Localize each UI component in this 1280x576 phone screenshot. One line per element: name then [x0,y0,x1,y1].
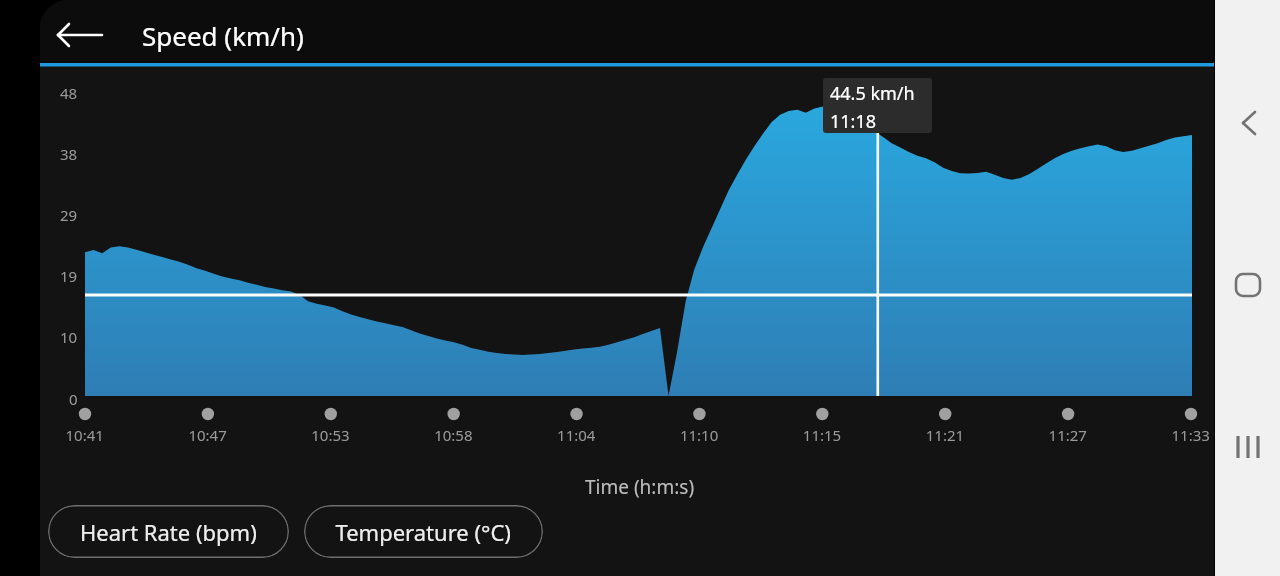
button[interactable]: Recent apps [1225,424,1271,470]
button[interactable] [48,505,289,558]
button[interactable] [304,505,543,558]
button[interactable]: Back [52,7,108,63]
button[interactable]: Home [1225,262,1271,308]
button[interactable]: Back [1225,100,1271,146]
